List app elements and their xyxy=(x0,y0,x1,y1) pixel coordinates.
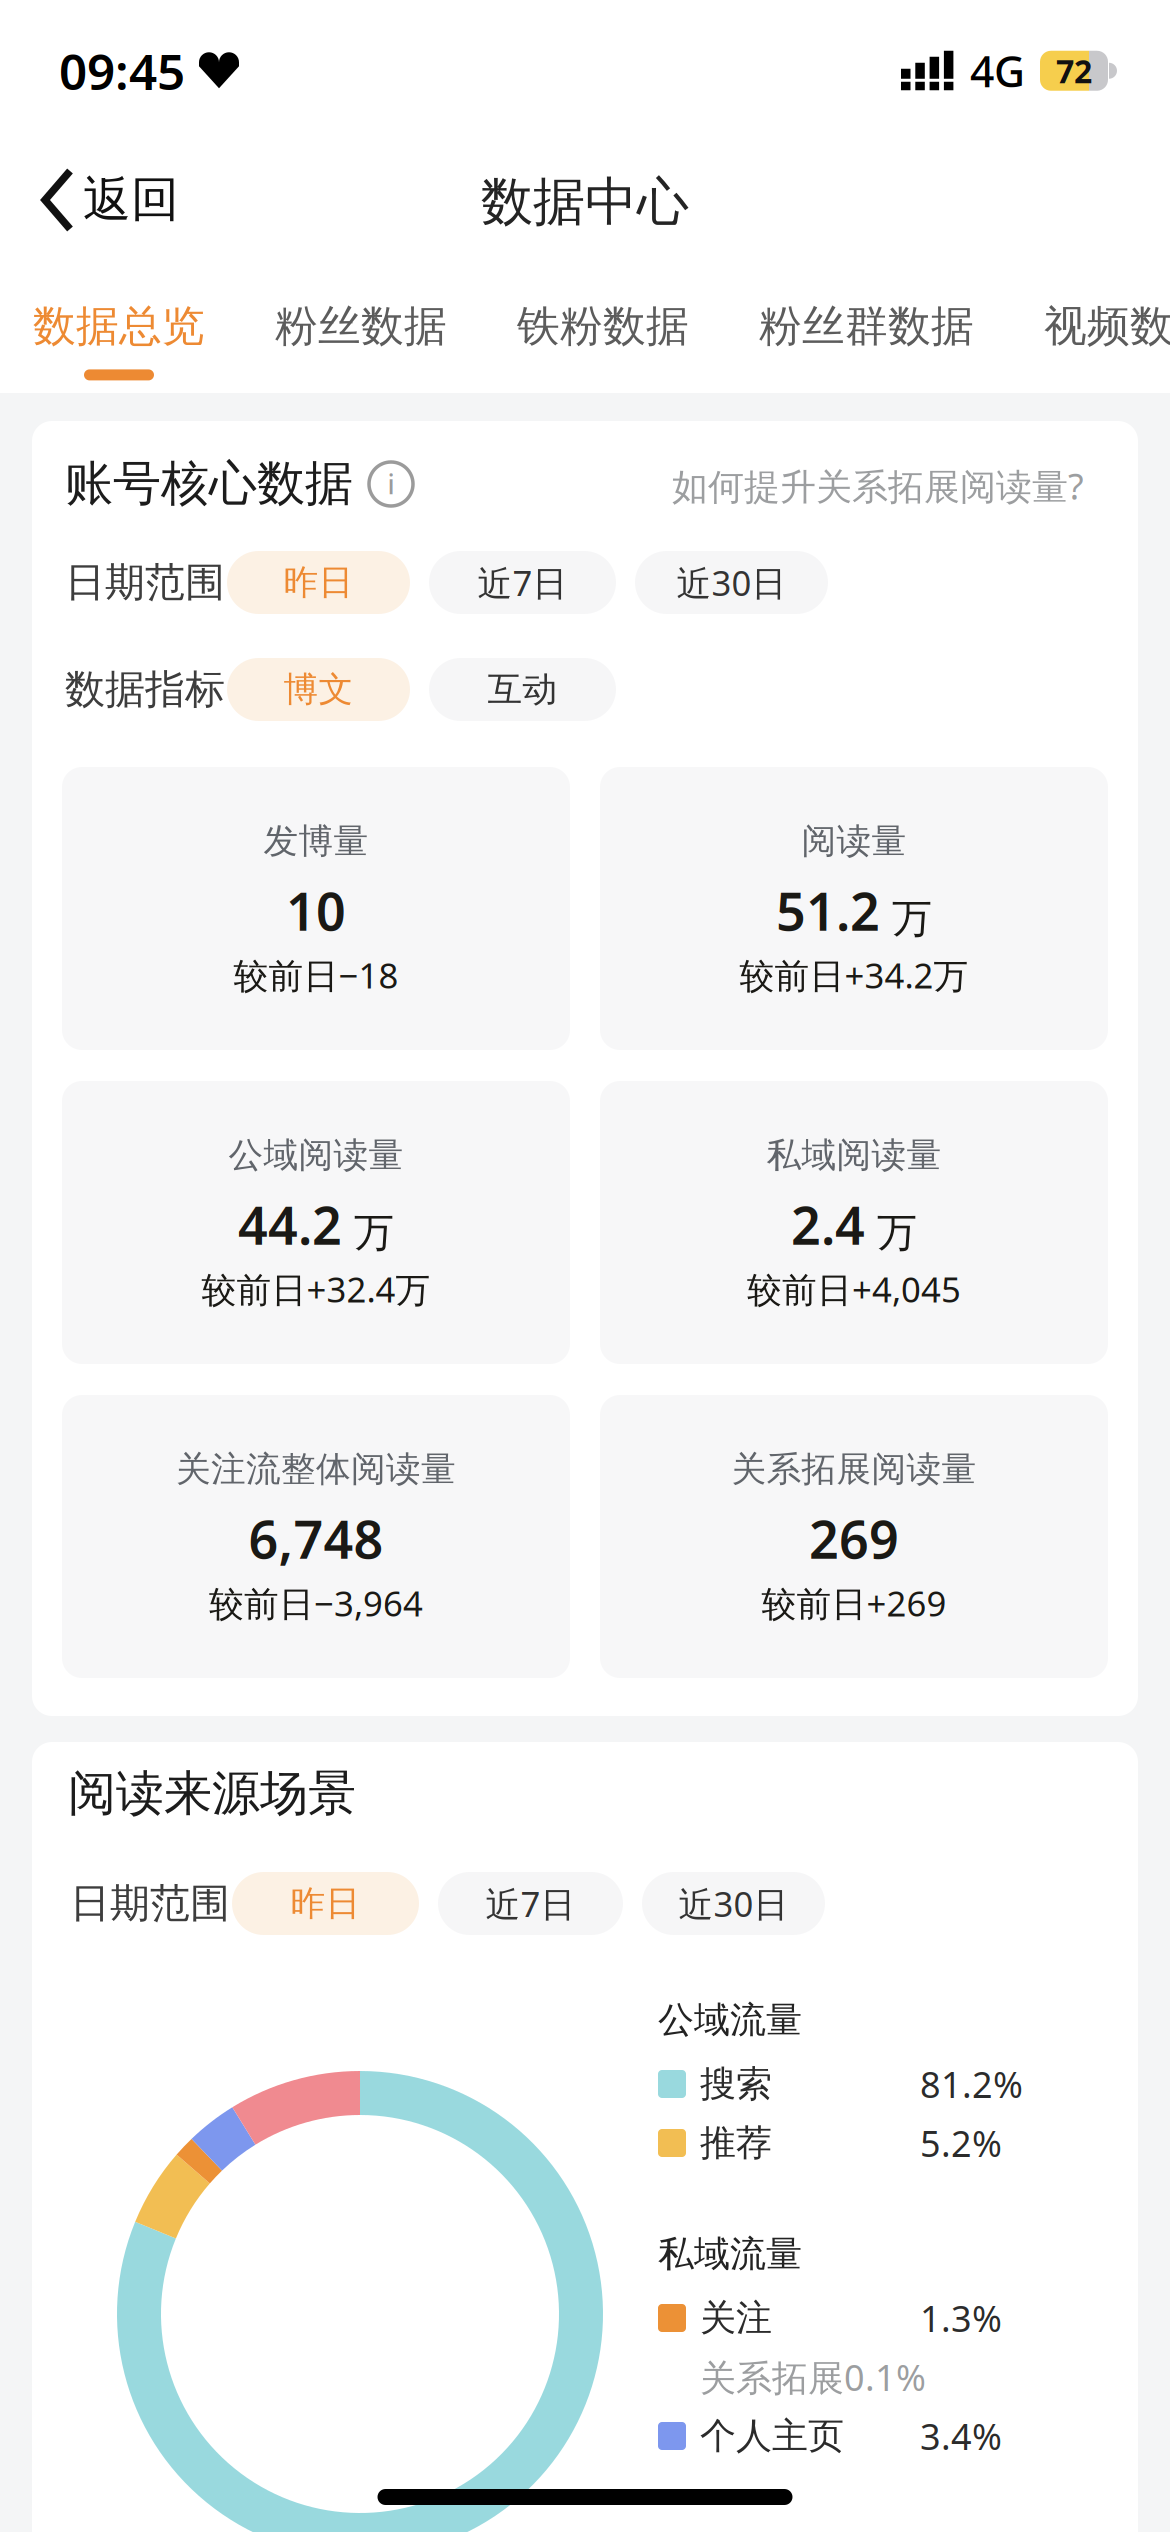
staticText: 5.2% xyxy=(920,2119,1002,2167)
button[interactable]: 数据总览 xyxy=(33,300,205,380)
staticText: 推荐 xyxy=(700,2121,772,2165)
staticText: 2.4 万 xyxy=(791,1190,917,1259)
staticText: 近30日 xyxy=(676,559,786,605)
staticText: 81.2% xyxy=(920,2060,1023,2108)
staticText: 私域阅读量 xyxy=(766,1134,941,1177)
staticText: 关注流整体阅读量 xyxy=(176,1448,456,1491)
staticText: 账号核心数据 xyxy=(65,454,353,513)
button[interactable]: 粉丝群数据 xyxy=(759,300,974,352)
staticText: 较前日+4,045 xyxy=(747,1266,961,1312)
staticText: 10 xyxy=(286,876,346,945)
staticText: 发博量 xyxy=(263,820,368,863)
staticText: 关注 xyxy=(700,2296,772,2340)
staticText: 269 xyxy=(809,1504,899,1573)
staticText: 较前日+269 xyxy=(761,1580,946,1626)
staticText: 日期范围 xyxy=(65,558,225,607)
staticText: 公域阅读量 xyxy=(228,1134,403,1177)
button[interactable]: 博文 xyxy=(227,658,410,721)
staticText: 数据中心 xyxy=(481,170,689,234)
button[interactable]: 近30日 xyxy=(635,551,828,614)
staticText: 关系拓展阅读量 xyxy=(731,1448,976,1491)
staticText: 阅读量 xyxy=(801,820,906,863)
staticText: 公域流量 xyxy=(658,1998,802,2042)
staticText: 数据指标 xyxy=(65,665,225,714)
staticText: 44.2 万 xyxy=(238,1190,394,1259)
staticText: i xyxy=(387,466,394,502)
staticText: 较前日+34.2万 xyxy=(739,952,968,998)
staticText: 1.3% xyxy=(920,2294,1002,2342)
staticText: 粉丝数据 xyxy=(275,300,447,352)
staticText: 博文 xyxy=(283,668,353,711)
staticText: 视频数据 xyxy=(1044,300,1170,352)
staticText: 近7日 xyxy=(477,559,567,605)
button[interactable]: 昨日 xyxy=(227,551,410,614)
staticText: 互动 xyxy=(487,668,557,711)
button[interactable]: 如何提升关系拓展阅读量? xyxy=(672,454,1084,510)
staticText: 72 xyxy=(1056,49,1092,92)
staticText: 近7日 xyxy=(485,1880,575,1926)
staticText: 昨日 xyxy=(290,1882,360,1925)
staticText: 4G xyxy=(970,42,1025,99)
button[interactable]: 昨日 xyxy=(232,1872,419,1935)
button[interactable]: 铁粉数据 xyxy=(517,300,689,352)
staticText: 如何提升关系拓展阅读量? xyxy=(672,462,1084,510)
staticText: 近30日 xyxy=(678,1880,788,1926)
button[interactable]: 近7日 xyxy=(429,551,616,614)
button[interactable]: 近30日 xyxy=(642,1872,825,1935)
staticText: 私域流量 xyxy=(658,2232,802,2276)
staticText: 09:45 xyxy=(59,38,185,103)
staticText: 铁粉数据 xyxy=(517,300,689,352)
staticText: 搜索 xyxy=(700,2062,772,2106)
staticText: 较前日−3,964 xyxy=(209,1580,423,1626)
staticText: 阅读来源场景 xyxy=(68,1764,356,1823)
staticText: 3.4% xyxy=(920,2412,1002,2460)
button[interactable]: 粉丝数据 xyxy=(275,300,447,352)
staticText: 关系拓展0.1% xyxy=(700,2353,926,2401)
button[interactable]: 视频数据 xyxy=(1044,300,1170,352)
staticText: 6,748 xyxy=(248,1504,383,1573)
button[interactable]: 近7日 xyxy=(438,1872,623,1935)
staticText: 51.2 万 xyxy=(776,876,932,945)
staticText: 较前日−18 xyxy=(233,952,398,998)
staticText: 粉丝群数据 xyxy=(759,300,974,352)
button[interactable]: 互动 xyxy=(429,658,616,721)
staticText: 较前日+32.4万 xyxy=(201,1266,430,1312)
staticText: 昨日 xyxy=(283,561,353,604)
staticText: 返回 xyxy=(83,170,179,229)
staticText: 数据总览 xyxy=(33,300,205,352)
staticText: 日期范围 xyxy=(70,1879,230,1928)
button[interactable]: 返回 xyxy=(40,170,179,233)
staticText: 个人主页 xyxy=(700,2414,844,2458)
